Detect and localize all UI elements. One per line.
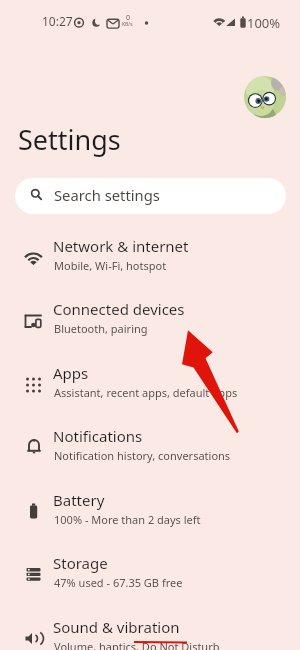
staticText: Apps xyxy=(53,363,89,383)
button[interactable]: Connected devices xyxy=(0,291,300,354)
staticText: 100% xyxy=(247,14,281,32)
staticText: Connected devices xyxy=(53,299,185,319)
staticText: Notification history, conversations xyxy=(54,448,231,463)
staticText: Volume, haptics, Do Not Disturb xyxy=(54,639,220,650)
staticText: Sound & vibration xyxy=(53,617,180,637)
button[interactable]: Battery xyxy=(0,482,300,545)
staticText: Settings xyxy=(18,121,121,158)
staticText: Network & internet xyxy=(53,236,189,256)
staticText: Storage xyxy=(53,553,108,573)
staticText: Mobile, Wi-Fi, hotspot xyxy=(54,258,167,273)
button[interactable]: Notifications xyxy=(0,418,300,481)
button[interactable] xyxy=(244,76,286,118)
button[interactable]: Network & internet xyxy=(0,228,300,291)
staticText: Notifications xyxy=(53,426,143,446)
staticText: Assistant, recent apps, default apps xyxy=(54,385,238,400)
staticText: 10:27 xyxy=(42,13,73,29)
staticText: 100% - More than 2 days left xyxy=(54,512,201,527)
staticText: KB/s xyxy=(122,21,133,28)
staticText: 47% used - 67.35 GB free xyxy=(54,575,183,590)
staticText: Search settings xyxy=(54,185,160,205)
staticText: Battery xyxy=(53,490,105,510)
button[interactable]: Sound & vibration xyxy=(0,609,300,650)
staticText: Bluetooth, pairing xyxy=(54,321,148,336)
button[interactable]: Storage xyxy=(0,545,300,608)
staticText: 0 xyxy=(126,13,131,23)
button[interactable]: Apps xyxy=(0,355,300,418)
button[interactable]: Search settings xyxy=(15,178,286,214)
